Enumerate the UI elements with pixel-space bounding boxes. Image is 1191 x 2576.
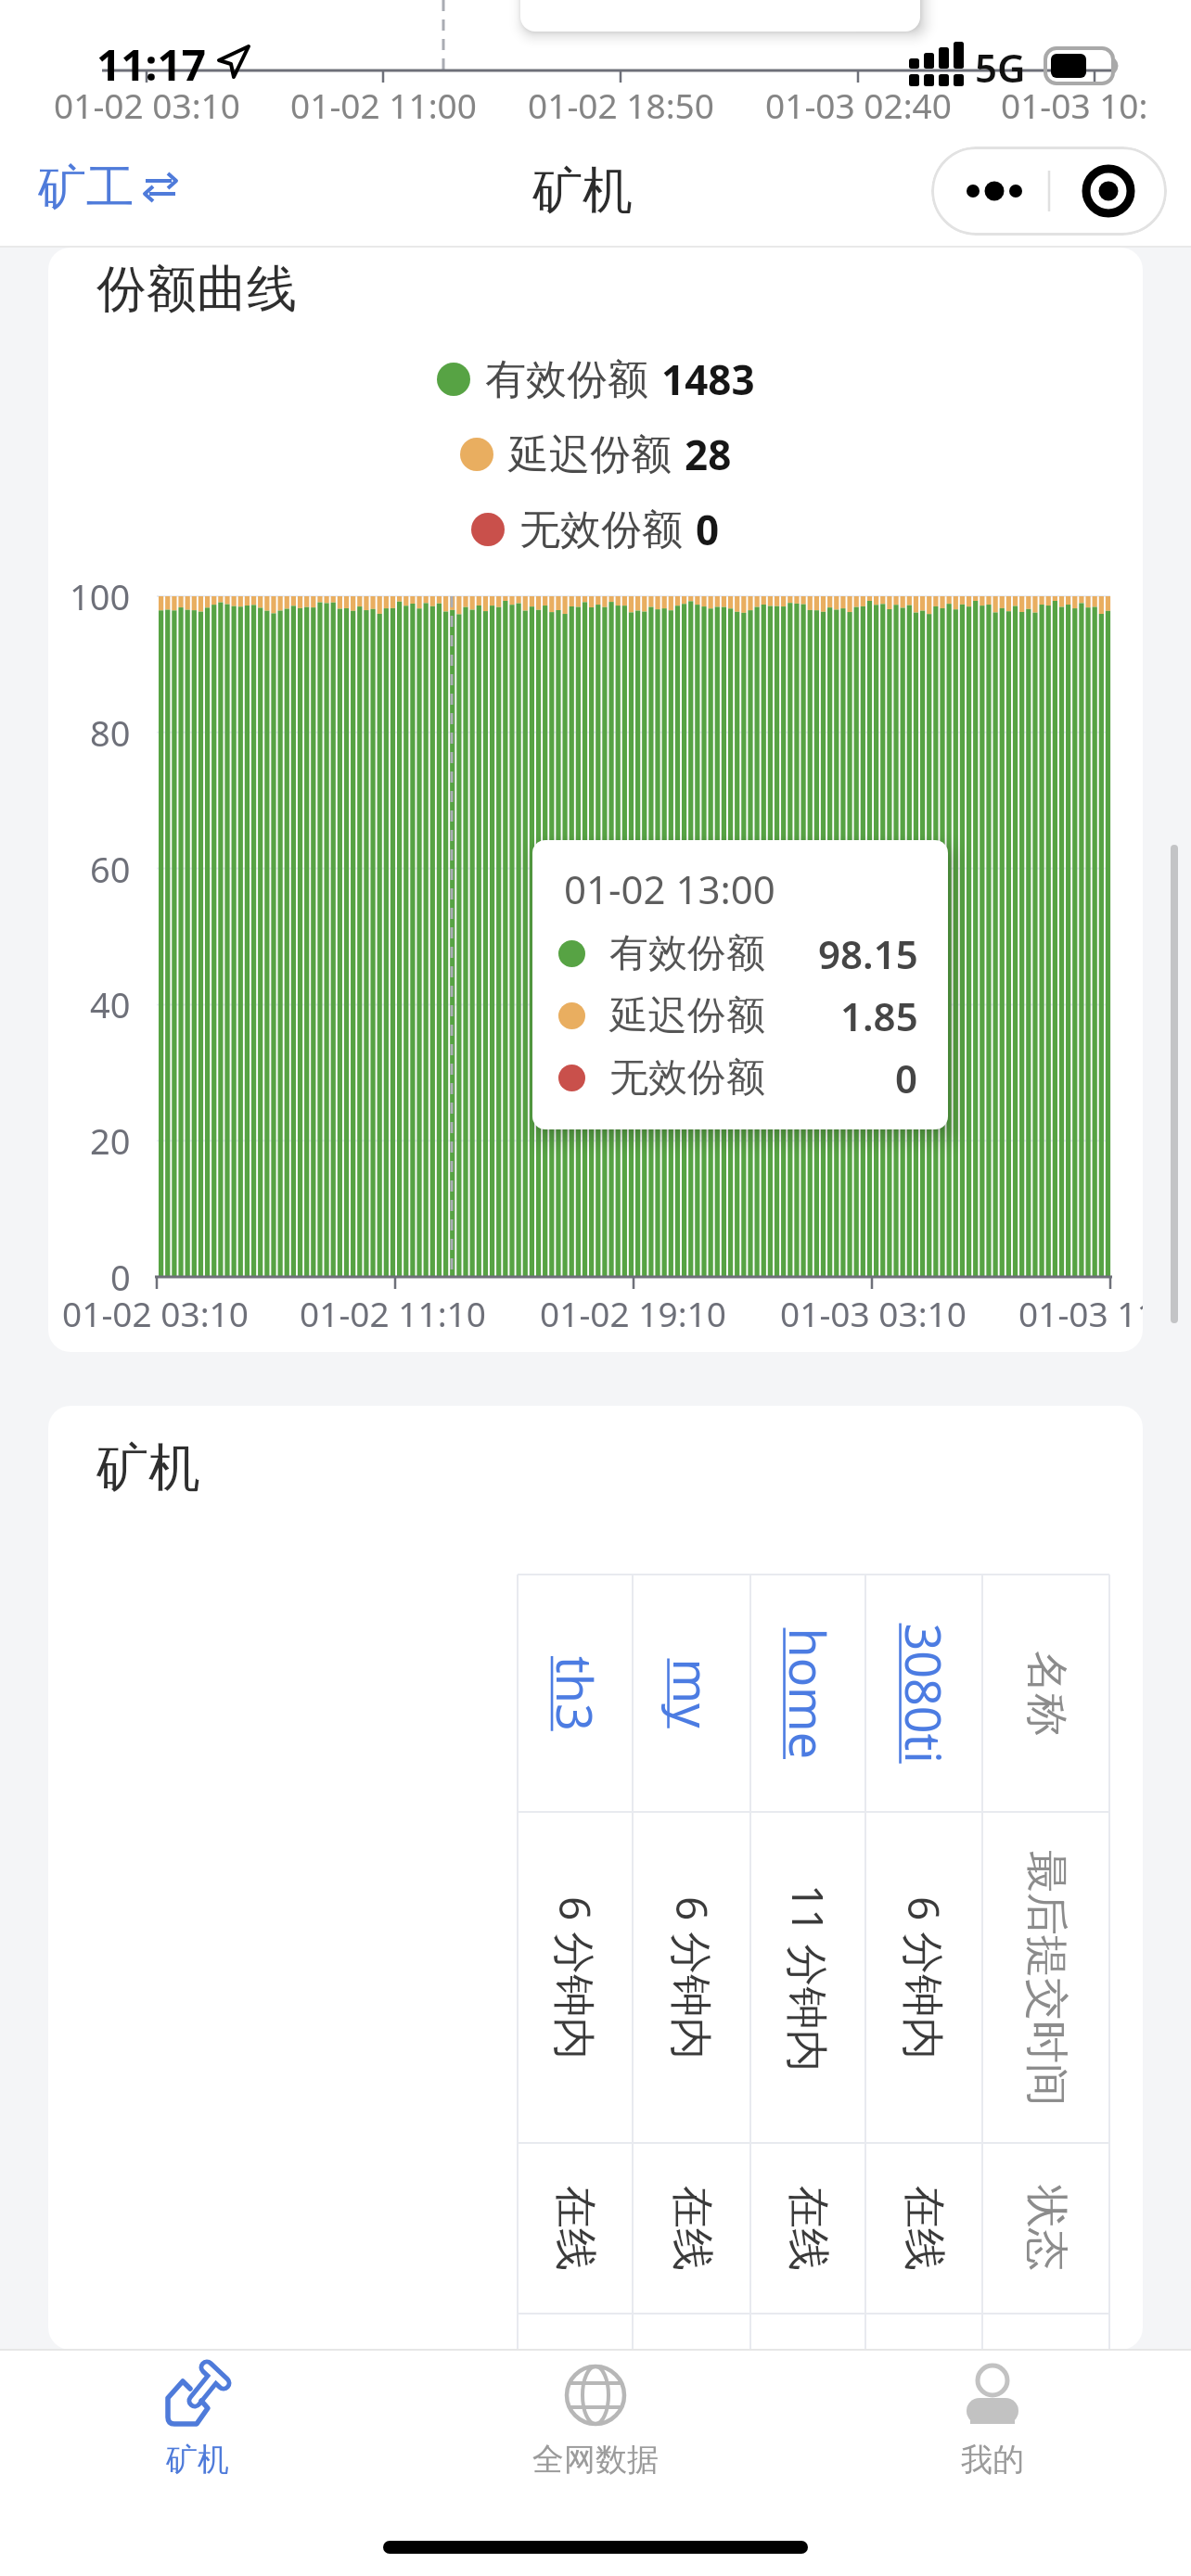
staticText: 矿机 (166, 2440, 229, 2480)
button[interactable]: 我的 (900, 2355, 1085, 2494)
staticText: my (659, 1658, 725, 1729)
staticText: 11:17 (96, 35, 207, 94)
staticText: 名称 (1019, 1651, 1073, 1736)
staticText: 01-03 10: (1001, 82, 1148, 128)
staticText: 01-03 11:10 (1018, 1290, 1143, 1336)
staticText: 5G (975, 41, 1026, 94)
staticText: 在线 (548, 2186, 602, 2271)
staticText: 我的 (961, 2440, 1024, 2480)
button[interactable]: 延迟份额 (460, 427, 732, 482)
staticText: home (775, 1628, 841, 1760)
button[interactable] (750, 1575, 865, 1812)
staticText: th3 (543, 1656, 608, 1731)
button[interactable] (634, 1575, 749, 1812)
button[interactable]: 矿工 (38, 158, 177, 217)
staticText: 1483 (661, 351, 755, 407)
staticText: 01-02 03:10 (54, 82, 240, 126)
staticText: 在线 (897, 2186, 951, 2271)
staticText: 60 (90, 845, 131, 893)
staticText: 在线 (665, 2186, 719, 2271)
staticText: 01-02 19:10 (540, 1290, 726, 1336)
staticText: 状态 (1019, 2186, 1073, 2271)
staticText: 01-03 03:10 (780, 1290, 967, 1336)
staticText: 01-02 11:10 (300, 1290, 486, 1336)
button[interactable] (931, 147, 1049, 236)
button[interactable]: 有效份额 (437, 351, 755, 407)
staticText: 01-03 02:40 (765, 82, 952, 126)
staticText: 40 (90, 980, 131, 1028)
staticText: 全网数据 (532, 2440, 659, 2480)
staticText: 0 (895, 1052, 918, 1104)
staticText: 01-02 18:50 (528, 82, 714, 126)
staticText: 延迟份额 (508, 429, 672, 480)
staticText: 01-02 13:00 (564, 862, 775, 915)
staticText: 20 (90, 1116, 131, 1165)
button[interactable]: 无效份额 (471, 502, 720, 557)
staticText: 最后提交时间 (1019, 1850, 1073, 2106)
staticText: 3080ti (891, 1623, 957, 1764)
staticText: 有效份额 (609, 929, 765, 978)
staticText: 在线 (781, 2186, 835, 2271)
staticText: 1.85 (840, 989, 918, 1042)
staticText: 0 (110, 1253, 131, 1301)
button[interactable] (866, 1575, 981, 1812)
staticText: 28 (685, 427, 732, 482)
staticText: 6 分钟内 (895, 1896, 954, 2060)
button[interactable]: 矿机 (105, 2355, 290, 2494)
staticText: 无效份额 (609, 1053, 765, 1103)
staticText: 延迟份额 (609, 991, 765, 1040)
button[interactable] (518, 1575, 633, 1812)
button[interactable] (1049, 147, 1167, 236)
staticText: 80 (90, 708, 131, 757)
staticText: 份额曲线 (96, 258, 297, 321)
staticText: 98.15 (818, 927, 918, 980)
staticText: 01-02 11:00 (290, 82, 477, 126)
staticText: 11 分钟内 (779, 1884, 838, 2072)
staticText: 0 (696, 502, 720, 557)
staticText: 矿工 (38, 158, 134, 217)
staticText: 矿机 (96, 1435, 200, 1501)
staticText: 100 (70, 572, 131, 620)
button[interactable]: 全网数据 (503, 2355, 688, 2494)
staticText: 有效份额 (485, 354, 648, 405)
staticText: 6 分钟内 (663, 1896, 722, 2060)
staticText: 无效份额 (519, 504, 683, 555)
staticText: 6 分钟内 (546, 1896, 605, 2060)
staticText: 矿机 (532, 159, 633, 217)
staticText: 01-02 03:10 (62, 1290, 249, 1336)
